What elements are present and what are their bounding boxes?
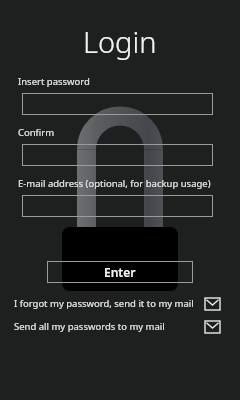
staticText: Enter [104,264,136,280]
staticText: Insert password [18,75,232,88]
staticText: I forgot my password, send it to my mail [14,297,205,310]
staticText: E-mail address (optional, for backup usa… [18,177,232,190]
button[interactable] [22,195,213,217]
staticText: Send all my passwords to my mail [14,320,205,333]
staticText: Login [83,22,157,61]
button[interactable]: Enter [47,261,193,283]
other: Send mail [205,298,220,310]
button[interactable] [22,144,213,166]
other: Send mail [205,321,220,333]
button[interactable]: Send all my passwords to my mail [0,320,240,333]
staticText: Confirm [18,126,232,139]
button[interactable]: I forgot my password, send it to my mail [0,297,240,310]
button[interactable] [22,93,213,115]
